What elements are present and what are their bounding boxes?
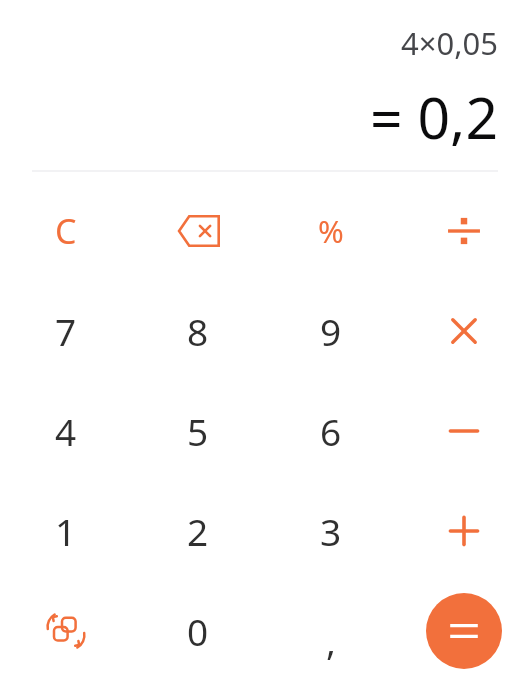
button[interactable]: 1: [0, 481, 132, 581]
staticText: 9: [320, 306, 342, 356]
button[interactable]: Percent: [264, 181, 397, 281]
button[interactable]: 0: [132, 581, 264, 680]
button[interactable]: Unit converter: [0, 581, 132, 680]
button[interactable]: 6: [264, 381, 397, 481]
staticText: 8: [187, 306, 209, 356]
button[interactable]: Clear: [0, 181, 132, 281]
button[interactable]: 7: [0, 281, 132, 381]
staticText: 5: [187, 406, 209, 456]
staticText: 2: [187, 506, 209, 556]
staticText: 6: [320, 406, 342, 456]
button[interactable]: Minus: [397, 381, 530, 481]
staticText: 7: [55, 306, 77, 356]
staticText: = 0,2: [32, 78, 498, 156]
button[interactable]: Plus: [397, 481, 530, 581]
button[interactable]: Equals: [426, 593, 502, 669]
staticText: 1: [55, 506, 77, 556]
button[interactable]: ,: [264, 581, 397, 680]
staticText: C: [55, 208, 77, 254]
staticText: %: [318, 210, 344, 252]
button[interactable]: 2: [132, 481, 264, 581]
staticText: ,: [326, 615, 336, 665]
button[interactable]: 4: [0, 381, 132, 481]
staticText: 4×0,05: [32, 22, 498, 64]
button[interactable]: 3: [264, 481, 397, 581]
button[interactable]: Multiply: [397, 281, 530, 381]
staticText: 0: [187, 606, 209, 656]
button[interactable]: Equals: [397, 581, 530, 680]
button[interactable]: Backspace: [132, 181, 264, 281]
staticText: 4: [55, 406, 77, 456]
button[interactable]: 5: [132, 381, 264, 481]
staticText: 3: [320, 506, 342, 556]
button[interactable]: Divide: [397, 181, 530, 281]
button[interactable]: 9: [264, 281, 397, 381]
button[interactable]: 8: [132, 281, 264, 381]
